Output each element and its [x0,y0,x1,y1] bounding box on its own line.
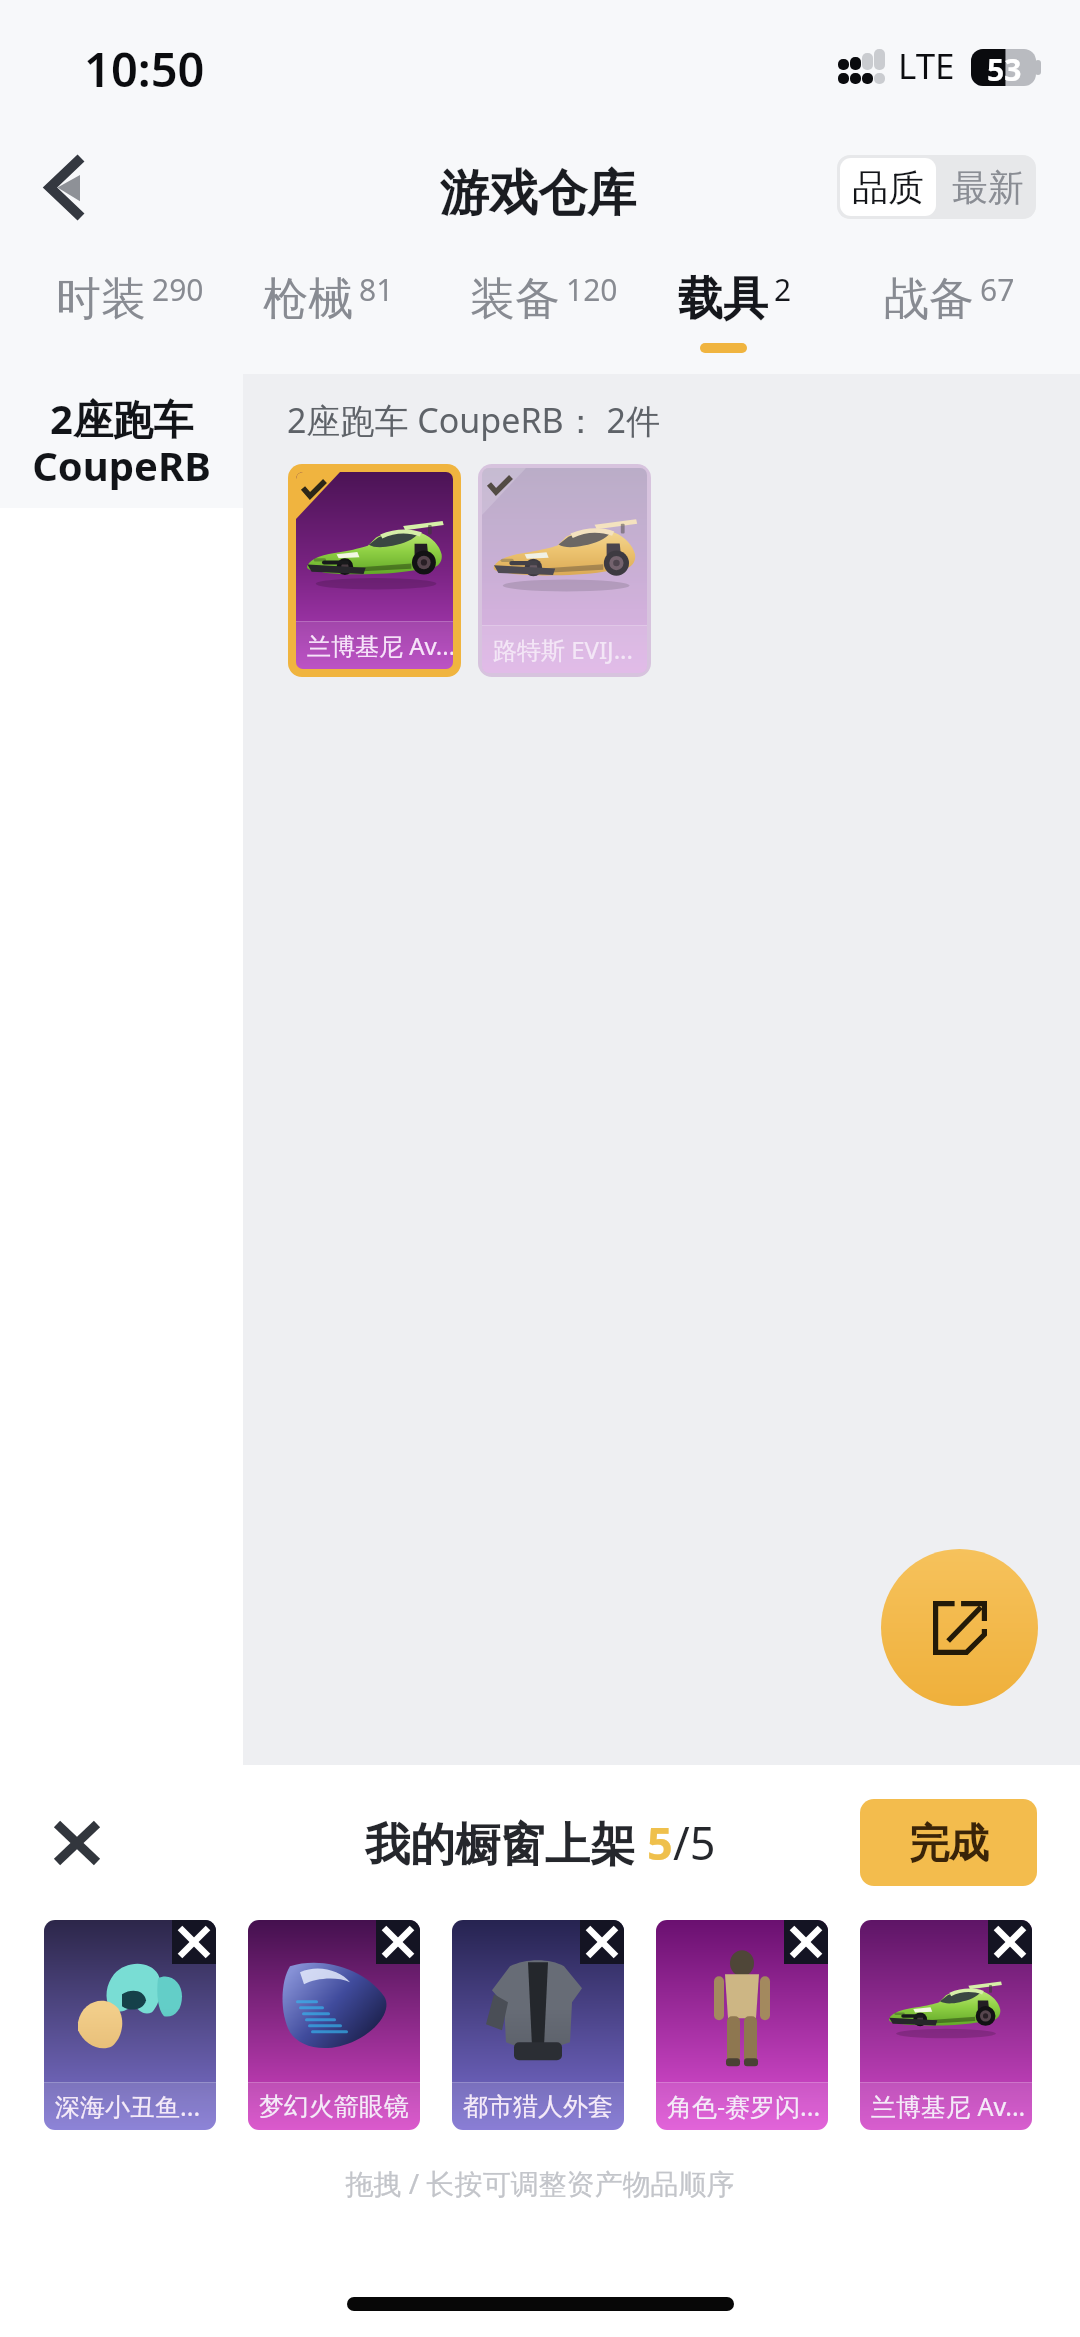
button[interactable]: 2座跑车 CoupeRB [0,374,243,508]
button[interactable]: 最新 [939,155,1036,219]
staticText: 角色-赛罗闪... [667,2089,821,2123]
button[interactable]: 角色-赛罗闪... [656,1920,828,2130]
staticText: 时装 [56,271,146,328]
staticText: 深海小丑鱼... [55,2089,201,2123]
staticText: 120 [566,269,618,310]
staticText: 2座跑车 CoupeRB： 2件 [287,397,660,443]
button[interactable]: Remove [784,1920,828,1964]
button[interactable]: Remove [172,1920,216,1964]
staticText: 梦幻火箭眼镜 [259,2091,409,2122]
staticText: LTE [898,42,955,90]
staticText: 81 [359,269,394,310]
button[interactable]: 枪械 [206,252,413,374]
staticText: 游戏仓库 [440,163,636,225]
button[interactable]: 深海小丑鱼... [44,1920,216,2130]
button[interactable]: Remove [376,1920,420,1964]
staticText: 载具 [678,271,768,328]
button[interactable]: 品质 [840,158,936,216]
staticText: 兰博基尼 Av... [307,629,453,662]
button[interactable]: Remove [580,1920,624,1964]
staticText: 最新 [952,165,1024,210]
button[interactable]: 兰博基尼 Av... [296,472,453,669]
staticText: 战备 [884,271,974,328]
button[interactable]: Remove [988,1920,1032,1964]
button[interactable]: 战备 [827,252,1034,374]
button[interactable]: 时装 [0,252,206,374]
button[interactable]: 载具 [620,252,827,374]
staticText: 拖拽 / 长按可调整资产物品顺序 [0,2164,1080,2202]
button[interactable]: 装备 [413,252,620,374]
button[interactable]: 兰博基尼 Av... [860,1920,1032,2130]
button[interactable]: 完成 [860,1799,1037,1886]
staticText: 品质 [852,165,924,210]
staticText: 290 [152,269,204,310]
staticText: 枪械 [263,271,353,328]
button[interactable]: 路特斯 EVIJ... [482,468,647,673]
button[interactable]: 梦幻火箭眼镜 [248,1920,420,2130]
staticText: 路特斯 EVIJ... [493,633,633,666]
staticText: 2 [774,269,792,310]
staticText: 装备 [470,271,560,328]
button[interactable]: Close [29,1795,125,1891]
staticText: 10:50 [84,37,205,101]
staticText: 67 [980,269,1015,310]
staticText: 2座跑车 CoupeRB [32,391,211,493]
staticText: 都市猎人外套 [463,2091,613,2122]
button[interactable]: Open in new window [881,1549,1038,1706]
staticText: 53 [987,49,1022,86]
button[interactable]: 都市猎人外套 [452,1920,624,2130]
button[interactable]: Back [14,137,114,237]
staticText: /5 [673,1812,716,1873]
staticText: 完成 [909,1818,989,1868]
staticText: 我的橱窗上架 [365,1812,647,1873]
staticText: 兰博基尼 Av... [871,2089,1026,2123]
staticText: 5 [647,1812,673,1873]
